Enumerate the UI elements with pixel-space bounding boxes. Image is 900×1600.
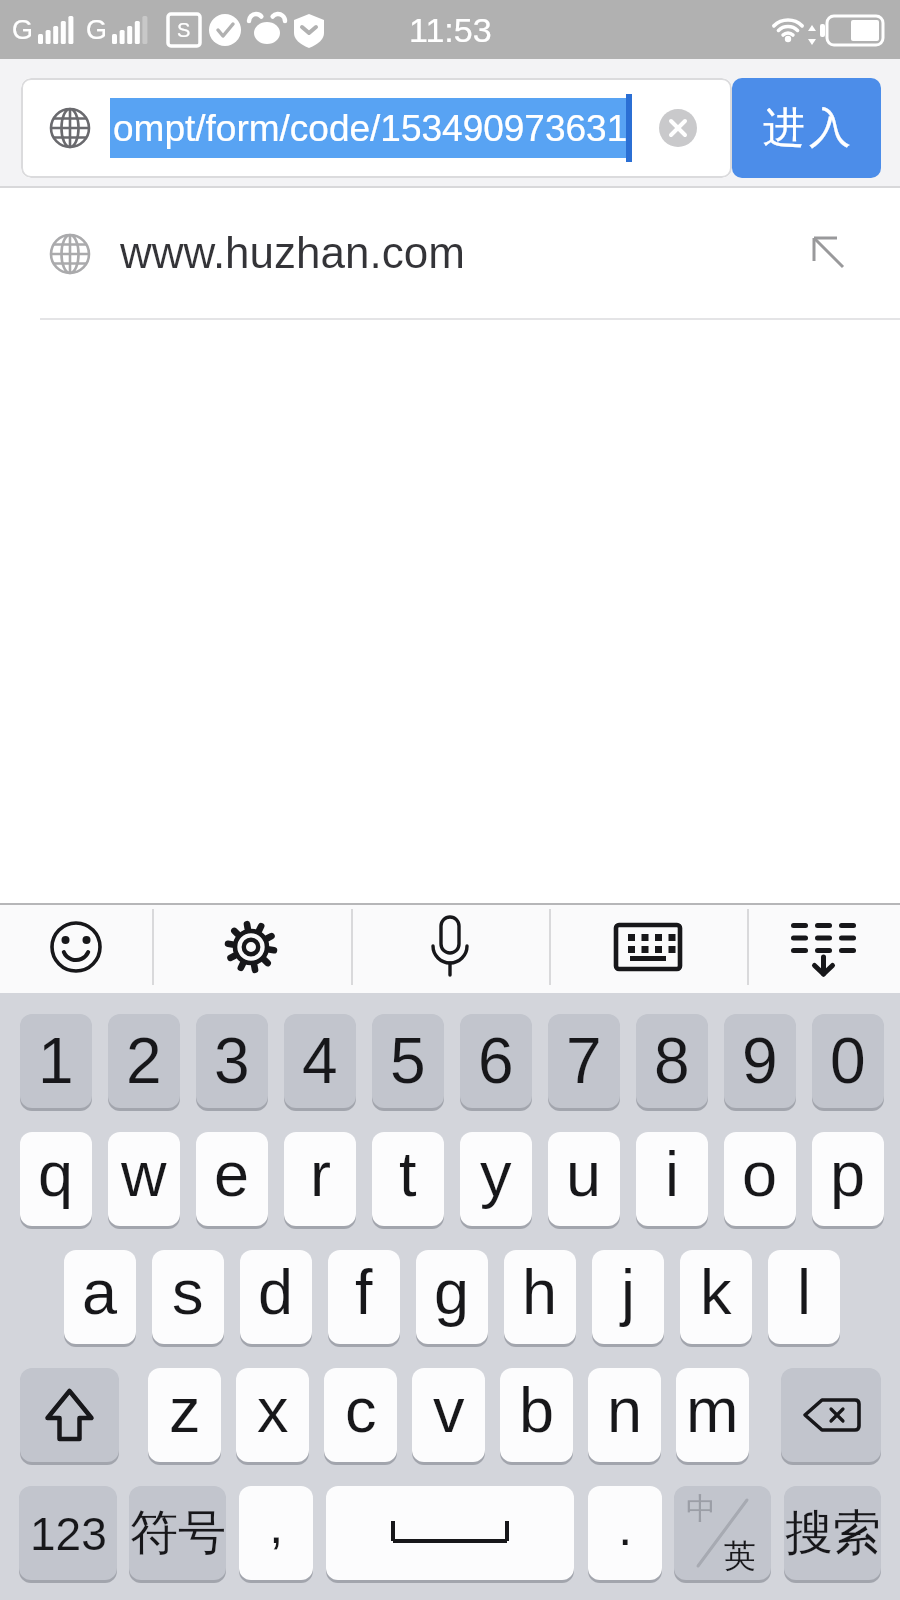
staticText: u (566, 1139, 602, 1209)
staticText: 5 (390, 1025, 426, 1097)
button[interactable]: 123 (19, 1486, 117, 1580)
button[interactable]: w (108, 1132, 180, 1226)
button[interactable]: r (284, 1132, 356, 1226)
staticText: 123 (30, 1508, 107, 1559)
button[interactable] (152, 905, 351, 993)
button[interactable]: 5 (372, 1014, 444, 1108)
staticText: x (257, 1375, 289, 1445)
staticText: ompt/form/code/153490973631 (113, 108, 628, 149)
staticText: 1 (38, 1025, 74, 1097)
button[interactable] (0, 905, 152, 993)
button[interactable]: 3 (196, 1014, 268, 1108)
staticText: q (38, 1139, 74, 1209)
button[interactable]: 2 (108, 1014, 180, 1108)
staticText: 进入 (761, 102, 853, 155)
button[interactable]: , (239, 1486, 313, 1580)
staticText: i (665, 1139, 679, 1209)
button[interactable]: 1 (20, 1014, 92, 1108)
staticText: 11:53 (409, 11, 492, 49)
button[interactable]: y (460, 1132, 532, 1226)
button[interactable] (326, 1486, 574, 1580)
button[interactable]: 7 (548, 1014, 620, 1108)
staticText: l (797, 1257, 811, 1327)
staticText: S (177, 19, 191, 41)
button[interactable]: f (328, 1250, 400, 1344)
staticText: o (742, 1139, 778, 1209)
staticText: f (355, 1257, 373, 1327)
button[interactable] (747, 905, 900, 993)
staticText: t (399, 1139, 417, 1209)
button[interactable] (21, 78, 732, 178)
staticText: 0 (830, 1025, 866, 1097)
staticText: 7 (566, 1025, 602, 1097)
staticText: 4 (302, 1025, 338, 1097)
staticText: h (522, 1257, 558, 1327)
button[interactable]: v (412, 1368, 485, 1462)
button[interactable]: 0 (812, 1014, 884, 1108)
staticText: w (121, 1139, 167, 1209)
button[interactable]: l (768, 1250, 840, 1344)
button[interactable]: 9 (724, 1014, 796, 1108)
button[interactable]: n (588, 1368, 661, 1462)
button[interactable] (351, 905, 549, 993)
button[interactable] (0, 188, 900, 319)
staticText: www.huzhan.com (120, 228, 465, 277)
staticText: 搜索 (785, 1503, 881, 1563)
button[interactable]: u (548, 1132, 620, 1226)
button[interactable]: 中 (674, 1486, 771, 1580)
button[interactable]: 搜索 (784, 1486, 881, 1580)
button[interactable]: j (592, 1250, 664, 1344)
staticText: 6 (478, 1025, 514, 1097)
button[interactable]: d (240, 1250, 312, 1344)
button[interactable]: x (236, 1368, 309, 1462)
staticText: c (345, 1375, 377, 1445)
button[interactable]: m (676, 1368, 749, 1462)
button[interactable]: s (152, 1250, 224, 1344)
staticText: z (169, 1375, 201, 1445)
staticText: a (82, 1257, 118, 1327)
staticText: , (269, 1496, 284, 1554)
button[interactable]: 8 (636, 1014, 708, 1108)
staticText: j (621, 1257, 635, 1327)
button[interactable]: p (812, 1132, 884, 1226)
staticText: r (310, 1139, 331, 1209)
button[interactable]: h (504, 1250, 576, 1344)
button[interactable]: q (20, 1132, 92, 1226)
button[interactable] (20, 1368, 119, 1462)
staticText: G (86, 15, 108, 45)
button[interactable]: 4 (284, 1014, 356, 1108)
button[interactable]: a (64, 1250, 136, 1344)
staticText: 3 (214, 1025, 250, 1097)
button[interactable]: 符号 (129, 1486, 226, 1580)
staticText: d (258, 1257, 294, 1327)
staticText: b (519, 1375, 555, 1445)
button[interactable] (549, 905, 747, 993)
button[interactable]: c (324, 1368, 397, 1462)
button[interactable]: i (636, 1132, 708, 1226)
staticText: g (434, 1257, 470, 1327)
button[interactable]: t (372, 1132, 444, 1226)
button[interactable] (659, 109, 697, 147)
button[interactable]: g (416, 1250, 488, 1344)
staticText: 英 (724, 1536, 756, 1576)
staticText: 9 (742, 1025, 778, 1097)
button[interactable] (781, 1368, 881, 1462)
staticText: 2 (126, 1025, 162, 1097)
button[interactable]: o (724, 1132, 796, 1226)
staticText: y (480, 1139, 512, 1209)
staticText: v (433, 1375, 465, 1445)
staticText: p (830, 1139, 866, 1209)
staticText: n (607, 1375, 643, 1445)
staticText: k (700, 1257, 732, 1327)
button[interactable]: b (500, 1368, 573, 1462)
staticText: 符号 (130, 1503, 226, 1563)
staticText: 8 (654, 1025, 690, 1097)
button[interactable]: z (148, 1368, 221, 1462)
staticText: G (12, 15, 34, 45)
staticText: . (618, 1498, 633, 1556)
button[interactable]: e (196, 1132, 268, 1226)
button[interactable]: . (588, 1486, 662, 1580)
button[interactable]: 6 (460, 1014, 532, 1108)
button[interactable]: 进入 (732, 78, 881, 178)
button[interactable]: k (680, 1250, 752, 1344)
